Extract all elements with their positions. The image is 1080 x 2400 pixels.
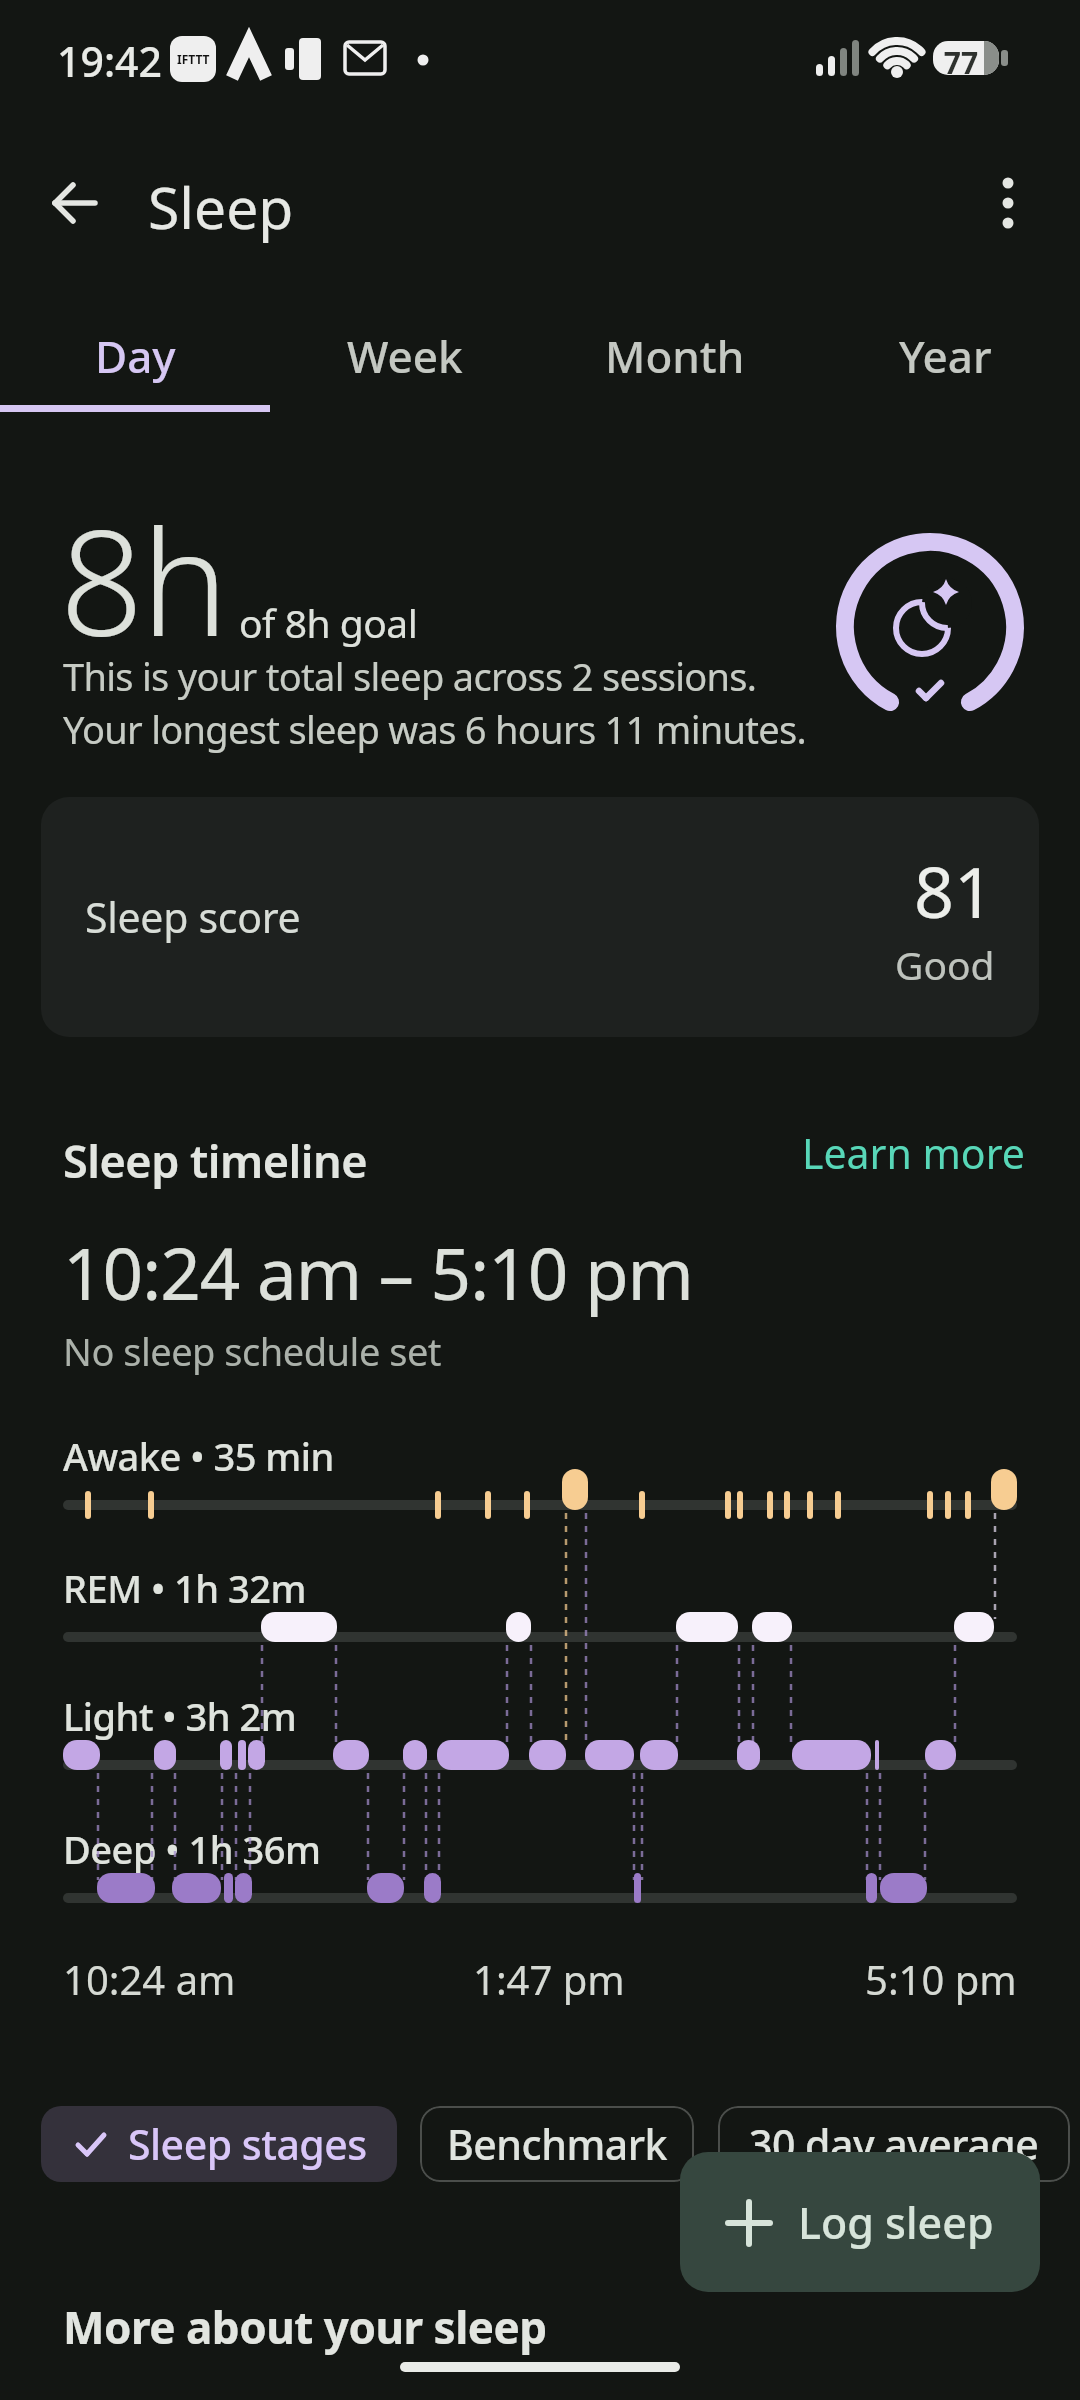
staticText: 1:47 pm (473, 1952, 625, 2006)
staticText: Sleep score (85, 889, 301, 945)
staticText: Deep • 1h 36m (63, 1823, 321, 1875)
staticText: No sleep schedule set (63, 1325, 442, 1377)
button[interactable]: Log sleep (680, 2152, 1040, 2292)
button[interactable]: Month (540, 300, 810, 412)
button[interactable]: Year (810, 300, 1080, 412)
button[interactable]: Sleep stages (41, 2106, 397, 2182)
button[interactable]: Sleep score (41, 797, 1039, 1037)
staticText: Sleep timeline (63, 1130, 368, 1191)
staticText: Light • 3h 2m (63, 1690, 297, 1742)
button[interactable]: Benchmark (420, 2106, 694, 2182)
staticText: Good (895, 938, 995, 991)
button[interactable]: Day (0, 300, 270, 412)
button[interactable] (35, 163, 115, 243)
button[interactable]: Learn more (710, 1118, 1040, 1188)
staticText: Learn more (802, 1125, 1025, 1181)
staticText: 30 day average (749, 2116, 1039, 2172)
staticText: Sleep stages (128, 2116, 367, 2172)
staticText: More about your sleep (63, 2297, 547, 2357)
staticText: 77 (939, 42, 983, 83)
staticText: 8h (60, 480, 227, 679)
button[interactable]: 30 day average (718, 2106, 1070, 2182)
staticText: 10:24 am (63, 1952, 236, 2006)
staticText: 19:42 (57, 33, 162, 89)
staticText: 5:10 pm (865, 1952, 1017, 2006)
staticText: REM • 1h 32m (63, 1562, 307, 1614)
staticText: Day (95, 326, 176, 386)
staticText: 81 (914, 843, 995, 938)
staticText: Sleep (148, 168, 294, 246)
staticText: Year (899, 326, 992, 386)
button[interactable] (970, 165, 1046, 241)
staticText: Week (347, 326, 463, 386)
staticText: IFTTT (177, 51, 210, 67)
staticText: Awake • 35 min (63, 1430, 334, 1482)
staticText: Log sleep (798, 2193, 994, 2252)
staticText: Month (605, 326, 745, 386)
staticText: 10:24 am – 5:10 pm (63, 1224, 693, 1321)
staticText: This is your total sleep across 2 sessio… (63, 650, 807, 755)
staticText: Benchmark (447, 2116, 667, 2172)
staticText: of 8h goal (239, 596, 418, 649)
button[interactable]: Week (270, 300, 540, 412)
